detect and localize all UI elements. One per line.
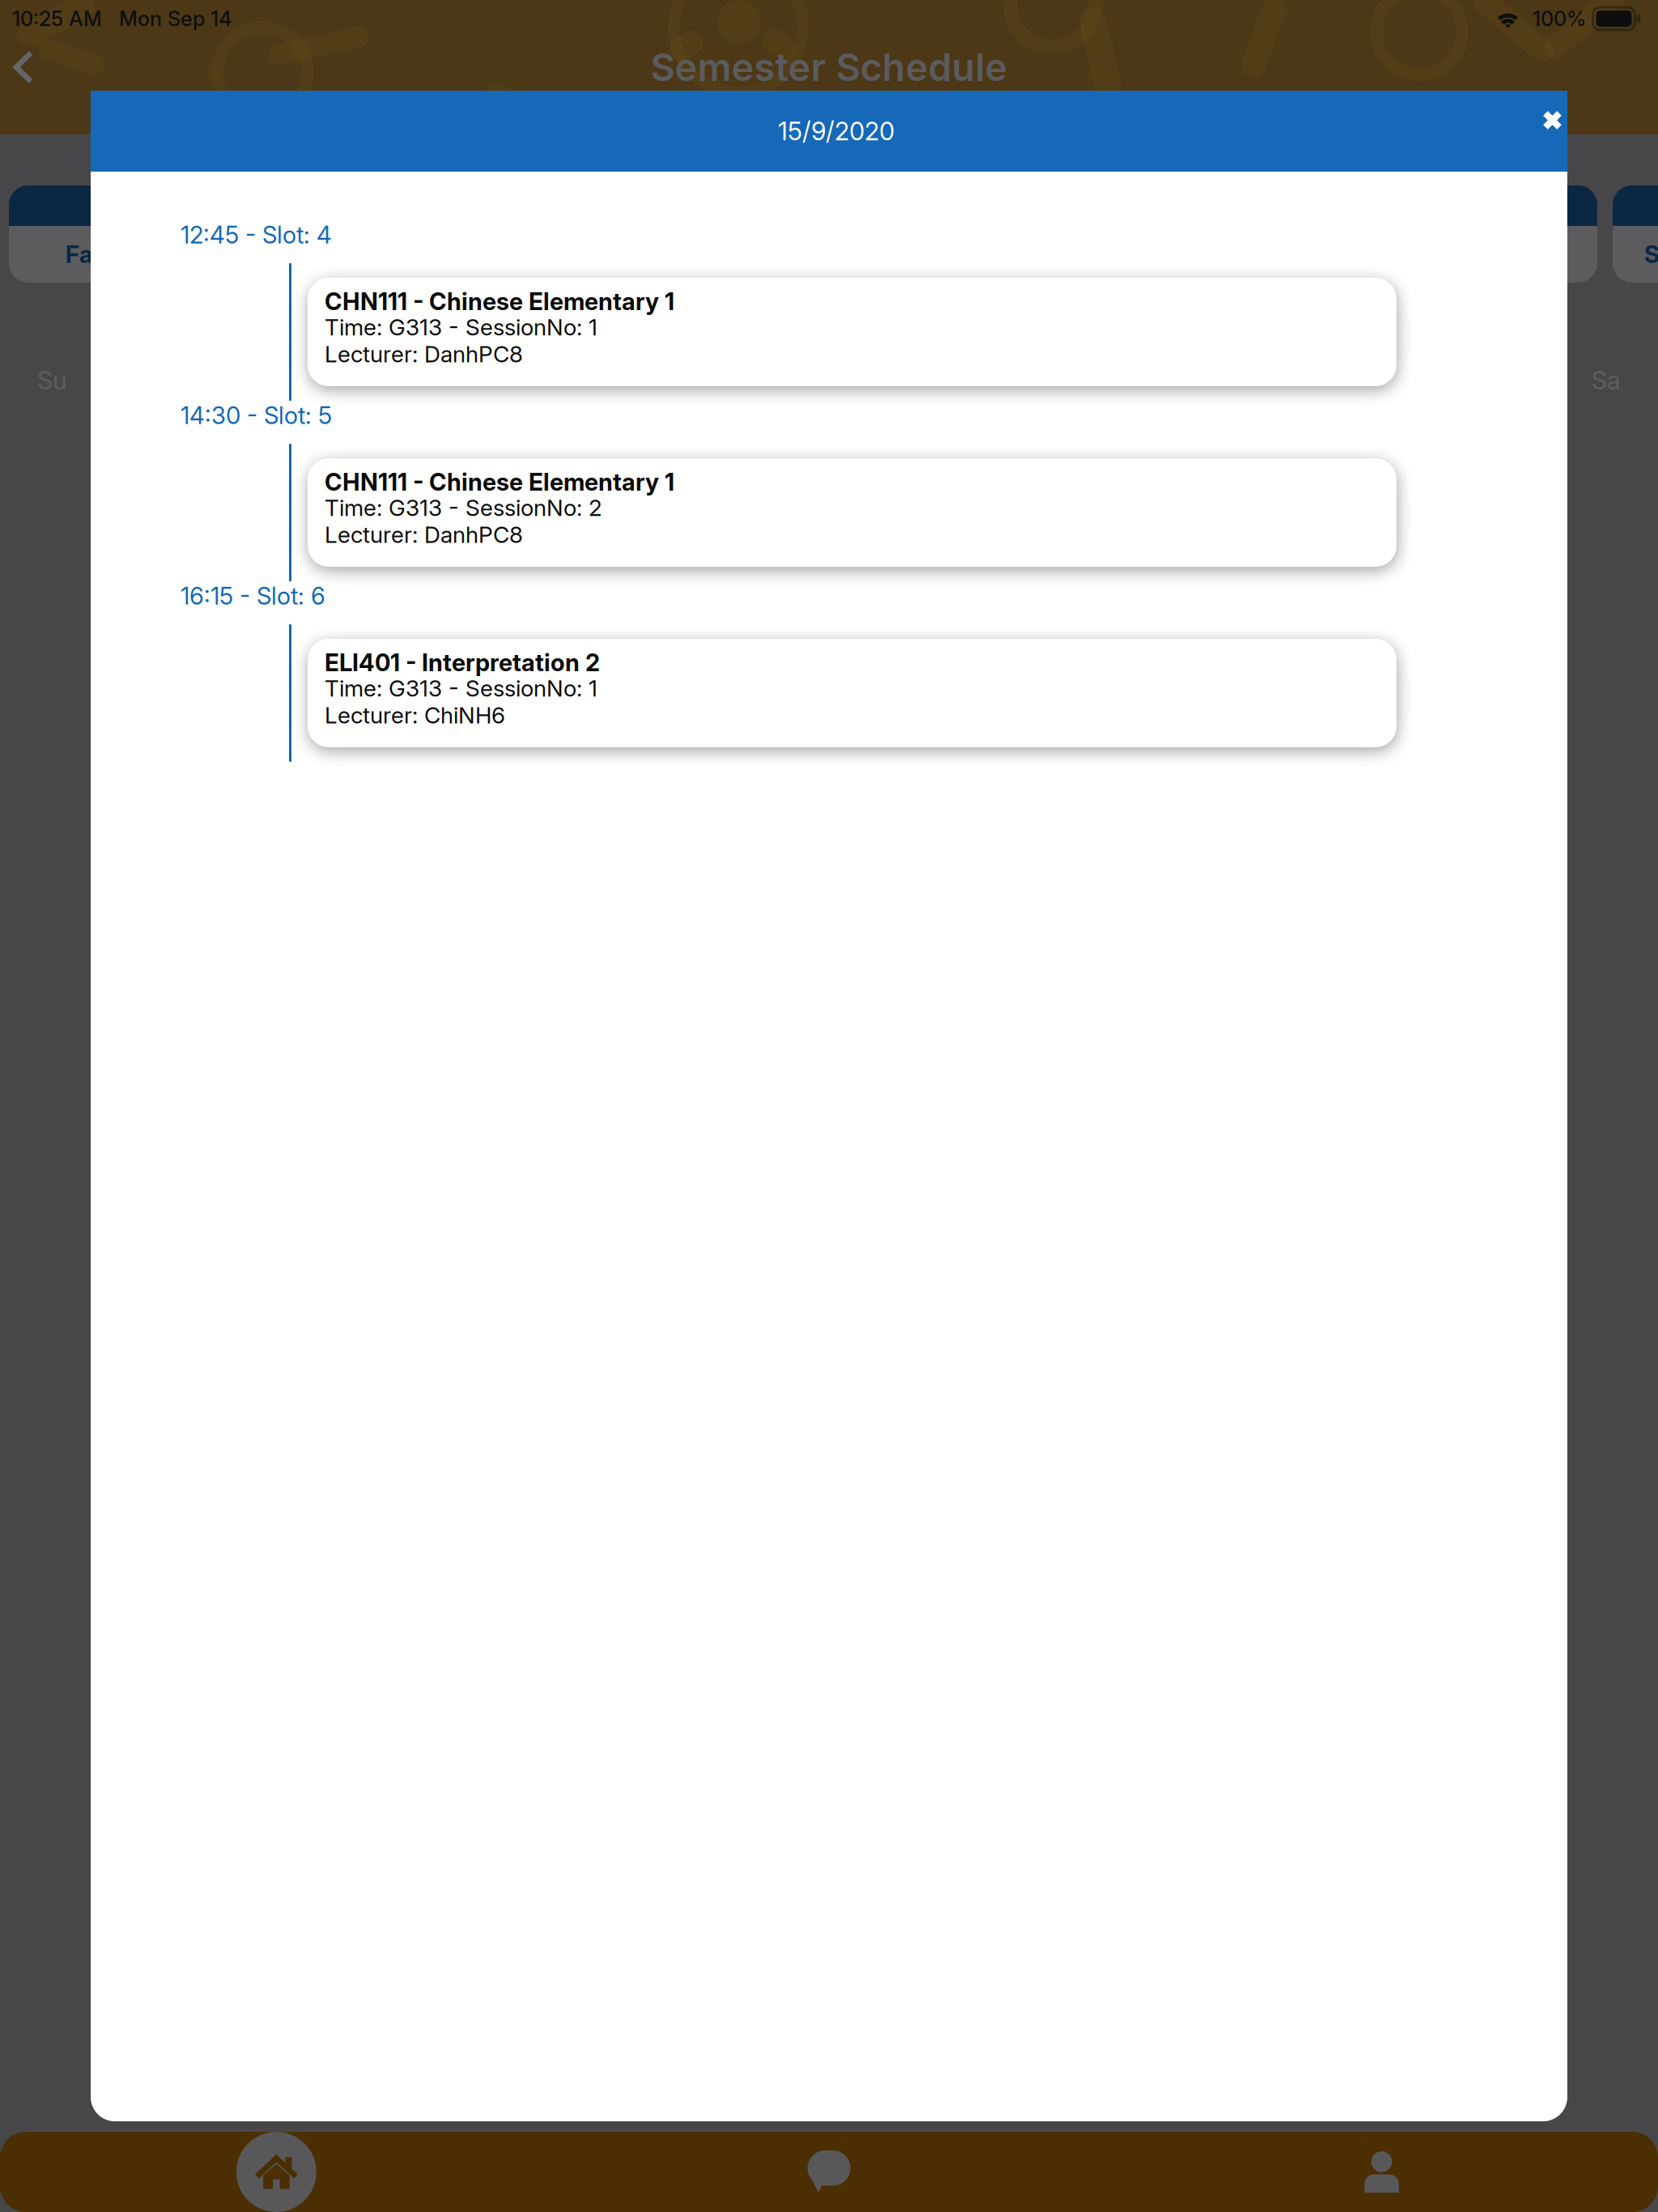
staticText: 16:15 - Slot: 6 (181, 585, 325, 608)
staticText: Tu (556, 368, 584, 392)
button[interactable]: Close (1524, 91, 1581, 149)
staticText: Sa (1592, 368, 1621, 392)
staticText: ELI401 - Interpretation 2 (325, 650, 600, 675)
staticText: Su (37, 368, 66, 392)
staticText: Fall2020 (66, 243, 166, 266)
staticText: Lecturer: DanhPC8 (325, 341, 523, 368)
staticText: Time: G313 - SessionNo: 2 (325, 494, 602, 521)
staticText: CHN111 - Chinese Elementary 1 (325, 289, 674, 314)
button[interactable]: Home (0, 2132, 553, 2212)
staticText: 100% (1521, 9, 1592, 29)
staticText: 14:30 - Slot: 5 (181, 404, 332, 427)
staticText: CHN111 - Chinese Elementary 1 (325, 470, 674, 494)
staticText: Time: G313 - SessionNo: 1 (325, 314, 597, 341)
button[interactable]: CHN111 - Chinese Elementary 1 (308, 278, 1397, 386)
staticText: 12:45 - Slot: 4 (181, 223, 332, 246)
staticText: Mo (293, 368, 329, 392)
button[interactable]: Back (0, 37, 47, 97)
staticText: Lecturer: ChiNH6 (325, 702, 505, 729)
button[interactable]: CHN111 - Chinese Elementary 1 (308, 458, 1397, 567)
staticText: Fr (1336, 368, 1358, 392)
button[interactable]: ELI401 - Interpretation 2 (308, 639, 1397, 747)
staticText: Th (1073, 368, 1103, 392)
staticText: We (811, 368, 847, 392)
staticText: Spring2021 (280, 243, 410, 266)
button[interactable]: Messages (553, 2150, 1105, 2193)
staticText: 15/9/2020 (778, 119, 895, 143)
staticText: Lecturer: DanhPC8 (325, 521, 523, 548)
staticText: Semester Schedule (650, 49, 1008, 86)
button[interactable]: Profile (1105, 2149, 1658, 2195)
staticText: Time: G313 - SessionNo: 1 (325, 675, 597, 702)
staticText: Summer2019 (1644, 243, 1658, 266)
staticText: 10:25 AM Mon Sep 14 (12, 9, 232, 29)
